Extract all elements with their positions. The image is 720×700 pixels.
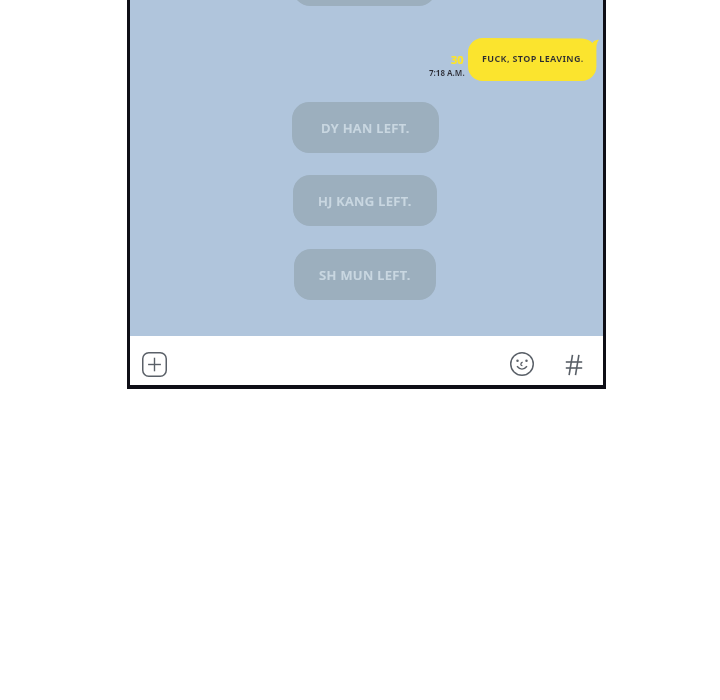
button[interactable]: Hashtag — [559, 350, 589, 380]
staticText: FUCK, STOP LEAVING. — [482, 52, 584, 64]
button[interactable]: FUCK, STOP LEAVING. — [468, 38, 599, 81]
button[interactable]: Add attachment — [141, 351, 167, 377]
staticText: 30 — [451, 52, 464, 67]
button[interactable]: Emoji — [508, 350, 536, 378]
button[interactable]: DY HAN LEFT. — [292, 102, 439, 153]
button[interactable]: SH MUN LEFT. — [294, 249, 436, 300]
staticText: HJ KANG LEFT. — [318, 192, 412, 210]
button[interactable]: HJ KANG LEFT. — [293, 175, 437, 226]
staticText: 7:18 A.M. — [429, 67, 465, 78]
staticText: SH MUN LEFT. — [319, 266, 411, 284]
staticText: DY HAN LEFT. — [321, 119, 410, 137]
